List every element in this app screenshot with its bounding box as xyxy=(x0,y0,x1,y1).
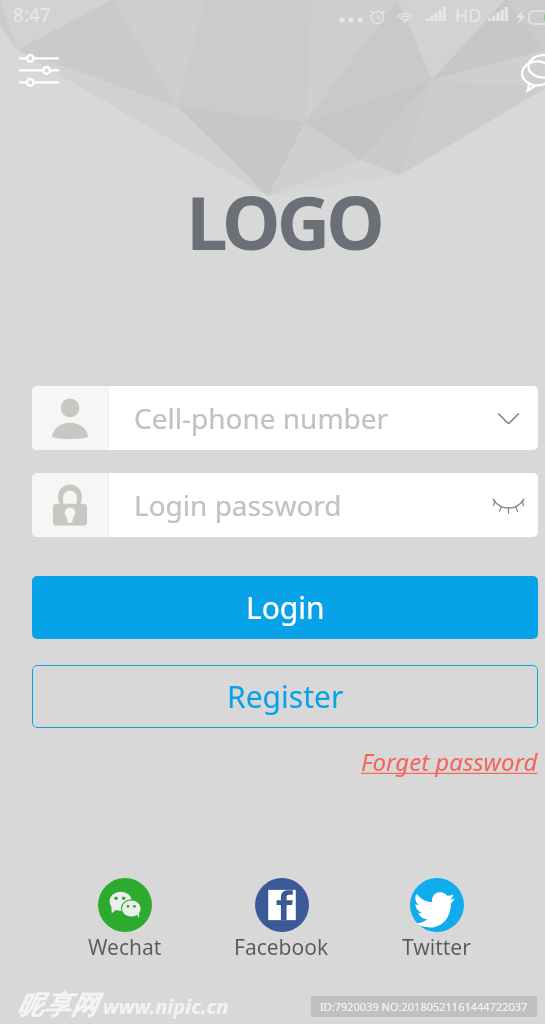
staticText: HD xyxy=(455,3,482,28)
staticText: Wechat xyxy=(88,933,162,962)
button[interactable]: Twitter xyxy=(402,878,471,962)
staticText: ID:7920039 NO:20180521161444722037 xyxy=(320,999,528,1014)
button[interactable]: Show password xyxy=(478,475,538,535)
button[interactable]: Forget password xyxy=(361,745,538,780)
button[interactable]: Choose country code xyxy=(478,388,538,448)
button[interactable]: Wechat xyxy=(88,878,162,962)
staticText: Twitter xyxy=(402,933,471,962)
button[interactable]: Chat xyxy=(500,52,545,97)
staticText: LOGO xyxy=(22,171,545,272)
button[interactable]: Cell-phone number xyxy=(32,386,538,450)
button[interactable]: Settings xyxy=(20,52,58,84)
staticText: 昵享网 xyxy=(16,989,97,1022)
button[interactable]: Register xyxy=(32,665,538,728)
button[interactable]: Facebook xyxy=(234,878,329,962)
staticText: Cell-phone number xyxy=(134,399,478,437)
staticText: Login password xyxy=(134,486,478,524)
button[interactable]: Login password xyxy=(32,473,538,537)
staticText: Forget password xyxy=(361,745,538,778)
staticText: Facebook xyxy=(234,933,329,962)
staticText: www.nipic.cn xyxy=(103,993,229,1020)
button[interactable]: Login xyxy=(32,576,538,639)
staticText: Register xyxy=(227,676,344,717)
staticText: Login xyxy=(246,587,325,628)
staticText: 8:47 xyxy=(13,2,51,28)
